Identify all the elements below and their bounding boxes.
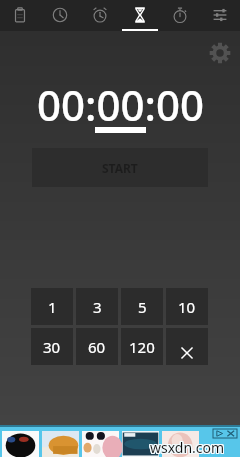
button[interactable]: 120 <box>121 328 163 365</box>
staticText: 3 <box>93 297 102 317</box>
staticText: wsxdn.com <box>149 439 224 457</box>
button[interactable]: 60 <box>76 328 118 365</box>
button[interactable]: Clock <box>40 0 80 31</box>
staticText: wsxdn.com <box>150 438 225 457</box>
staticText: 1 <box>48 297 57 317</box>
button[interactable]: 5 <box>121 288 163 325</box>
staticText: START <box>102 160 138 176</box>
button[interactable]: 30 <box>31 328 73 365</box>
staticText: wsxdn.com <box>151 438 226 457</box>
staticText: wsxdn.com <box>149 438 224 457</box>
button[interactable]: Tools <box>200 0 240 31</box>
staticText: wsxdn.com <box>151 437 226 456</box>
staticText: 5 <box>138 297 147 317</box>
button[interactable]: Settings <box>209 42 231 64</box>
staticText: 60 <box>88 337 106 357</box>
button[interactable]: Notes <box>0 0 40 31</box>
staticText: wsxdn.com <box>150 437 225 456</box>
staticText: 00:00:00 <box>37 76 204 133</box>
button[interactable]: 1 <box>31 288 73 325</box>
staticText: wsxdn.com <box>149 437 224 456</box>
staticText: wsxdn.com <box>151 439 226 457</box>
button[interactable]: 3 <box>76 288 118 325</box>
button[interactable]: 10 <box>166 288 208 325</box>
button[interactable]: Clear <box>166 328 208 365</box>
staticText: wsxdn.com <box>150 439 225 457</box>
button[interactable]: Stopwatch <box>160 0 200 31</box>
staticText: 120 <box>129 337 155 357</box>
button[interactable]: Alarm <box>80 0 120 31</box>
button[interactable]: Timer <box>120 0 160 31</box>
staticText: 10 <box>178 297 196 317</box>
staticText: 30 <box>43 337 61 357</box>
